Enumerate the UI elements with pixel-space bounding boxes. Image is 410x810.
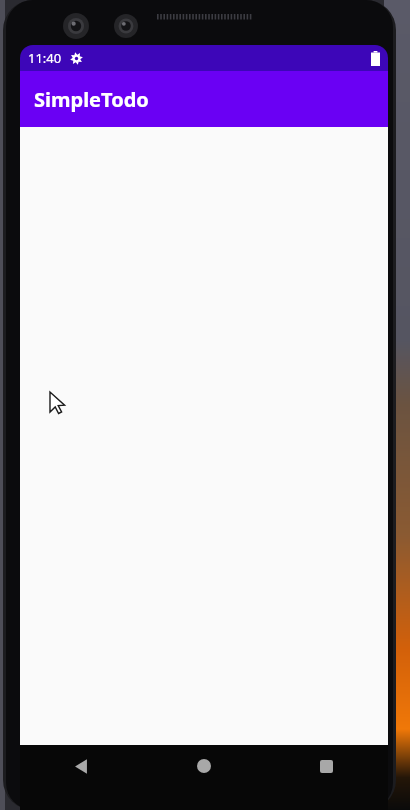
other: Settings status icon bbox=[70, 52, 83, 65]
staticText: Add Item Here! bbox=[26, 768, 140, 790]
button[interactable]: Back bbox=[20, 745, 142, 787]
staticText: SimpleTodo bbox=[34, 86, 149, 113]
button[interactable]: Home bbox=[142, 745, 265, 787]
button[interactable]: ADD bbox=[307, 763, 384, 801]
button[interactable]: Add Item Here! bbox=[24, 760, 298, 804]
button[interactable]: Recent apps bbox=[265, 745, 388, 787]
staticText: 11:40 bbox=[28, 49, 62, 67]
